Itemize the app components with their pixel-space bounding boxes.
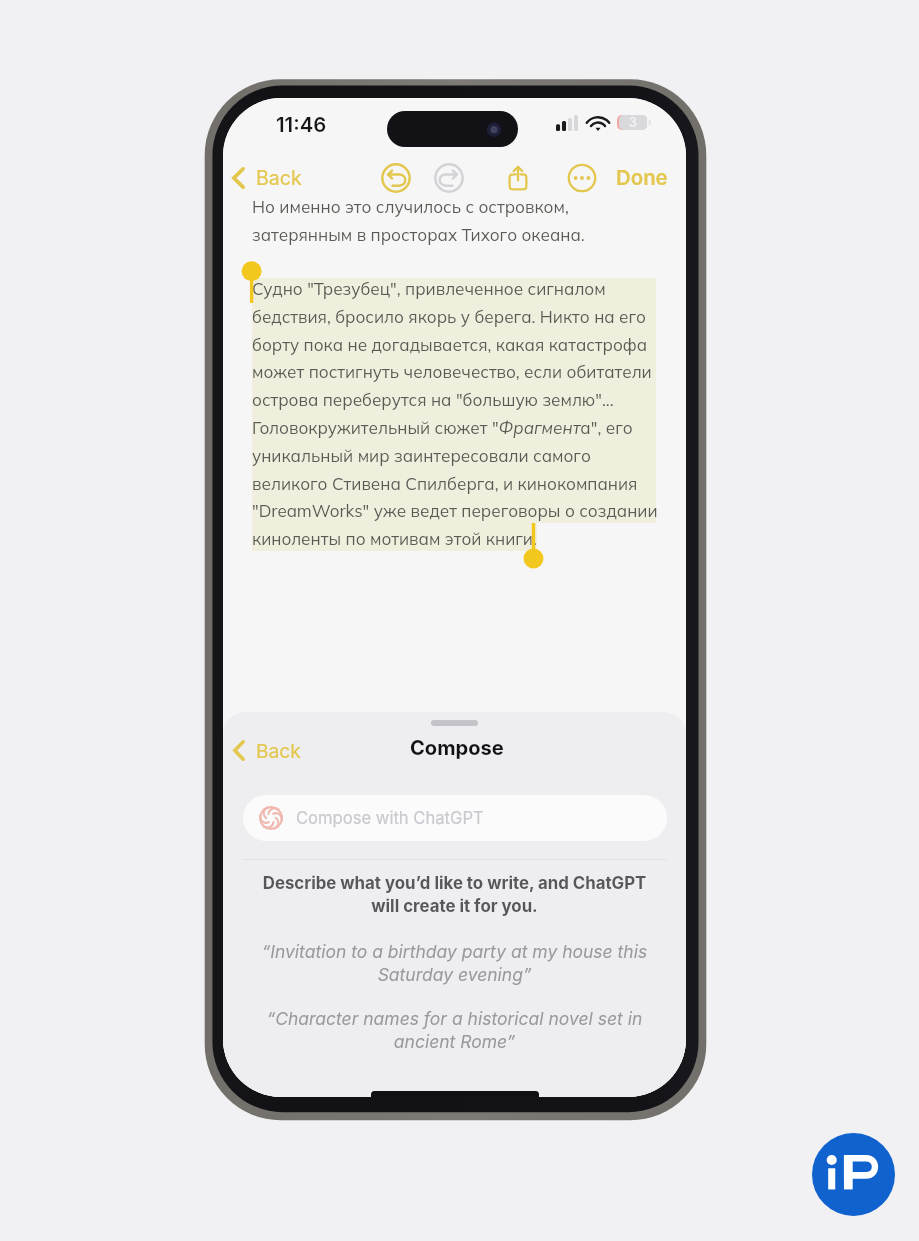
staticText: бедствия, бросило якорь у берега. Никто … xyxy=(252,306,646,327)
button[interactable]: Share xyxy=(496,156,539,199)
staticText: уникальный мир заинтересовали самого xyxy=(252,445,591,466)
staticText: "DreamWorks" уже ведет переговоры о созд… xyxy=(252,500,658,521)
staticText: Done xyxy=(616,165,668,190)
staticText: Back xyxy=(256,739,301,762)
staticText: острова переберутся на "большую землю"..… xyxy=(252,389,614,410)
staticText: великого Стивена Спилберга, и кинокомпан… xyxy=(252,473,638,494)
staticText: Compose with ChatGPT xyxy=(296,808,484,828)
button[interactable]: Back xyxy=(226,731,308,769)
button[interactable]: iPhones.ru xyxy=(812,1133,895,1216)
staticText: киноленты по мотивам этой книги. xyxy=(252,528,537,549)
staticText: борту пока не догадывается, какая катаст… xyxy=(252,334,648,355)
staticText: Compose xyxy=(410,736,504,760)
staticText: 3 xyxy=(629,115,637,130)
staticText: “Invitation to a birthday party at my ho… xyxy=(249,941,660,986)
button[interactable]: Back xyxy=(225,156,309,199)
button[interactable]: Redo xyxy=(427,156,470,199)
button[interactable]: More options xyxy=(560,156,603,199)
staticText: Back xyxy=(256,166,302,190)
staticText: 11:46 xyxy=(276,112,327,137)
button[interactable]: Done xyxy=(608,156,676,199)
staticText: затерянным в просторах Тихого океана. xyxy=(252,224,585,245)
button[interactable]: Undo xyxy=(374,156,417,199)
staticText: Головокружительный сюжет "Фрагмента", ег… xyxy=(252,417,633,438)
staticText: может постигнуть человечество, если обит… xyxy=(252,361,652,382)
staticText: Describe what you’d like to write, and C… xyxy=(247,873,662,916)
staticText: Но именно это случилось с островком, xyxy=(252,196,569,217)
button[interactable]: Compose with ChatGPT xyxy=(243,795,667,841)
staticText: Судно "Трезубец", привлеченное сигналом xyxy=(252,278,606,299)
staticText: “Character names for a historical novel … xyxy=(249,1008,660,1053)
